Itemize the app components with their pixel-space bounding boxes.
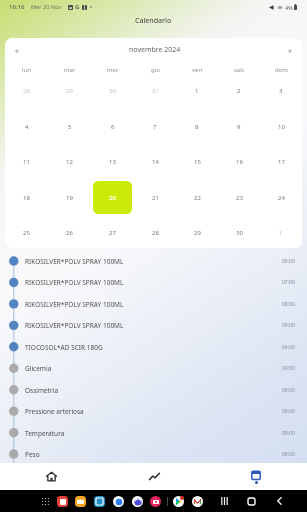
- staticText: sab: [234, 66, 244, 74]
- staticText: 8: [195, 123, 199, 131]
- button[interactable]: 22: [178, 181, 216, 214]
- button[interactable]: 26: [50, 216, 89, 248]
- button[interactable]: 11: [7, 145, 46, 178]
- staticText: 2: [237, 87, 241, 95]
- button[interactable]: 7: [136, 110, 174, 143]
- button[interactable]: RIKOSILVER*POLV SPRAY 100ML: [0, 274, 307, 290]
- button[interactable]: 28: [7, 74, 46, 107]
- staticText: Glicemia: [25, 364, 52, 373]
- staticText: Temperatura: [25, 429, 65, 438]
- button[interactable]: 27: [93, 216, 132, 248]
- staticText: 26: [66, 229, 73, 237]
- staticText: Calendario: [135, 16, 172, 26]
- button[interactable]: 9: [220, 110, 258, 143]
- button[interactable]: TIOCOSOL*AD SCIR 180G: [0, 339, 307, 355]
- button[interactable]: Play Store: [172, 490, 184, 512]
- button[interactable]: 23: [220, 181, 258, 214]
- button[interactable]: 28: [136, 216, 174, 248]
- staticText: ven: [192, 66, 203, 74]
- button[interactable]: 25: [7, 216, 46, 248]
- button[interactable]: RIKOSILVER*POLV SPRAY 100ML: [0, 253, 307, 269]
- button[interactable]: Back: [273, 490, 285, 512]
- button[interactable]: Previous month: [10, 43, 24, 57]
- button[interactable]: 8: [178, 110, 216, 143]
- button[interactable]: Glicemia: [0, 360, 307, 376]
- staticText: 5: [68, 123, 72, 131]
- staticText: 3: [279, 87, 283, 95]
- button[interactable]: Temperatura: [0, 425, 307, 441]
- staticText: 1: [195, 87, 199, 95]
- button[interactable]: 24: [262, 181, 300, 214]
- button[interactable]: 29: [50, 74, 89, 107]
- staticText: 14: [152, 158, 159, 166]
- staticText: dom: [275, 66, 288, 74]
- staticText: 30: [109, 87, 116, 95]
- staticText: 28: [152, 229, 159, 237]
- staticText: RIKOSILVER*POLV SPRAY 100ML: [25, 278, 124, 287]
- button[interactable]: 3: [262, 74, 300, 107]
- button[interactable]: 13: [93, 145, 132, 178]
- staticText: 25: [23, 229, 30, 237]
- button[interactable]: Gmail: [191, 490, 203, 512]
- staticText: 29: [66, 87, 73, 95]
- staticText: 10: [278, 123, 285, 131]
- button[interactable]: 4: [7, 110, 46, 143]
- button[interactable]: Home: [0, 463, 103, 490]
- button[interactable]: 17: [262, 145, 300, 178]
- staticText: mar: [64, 66, 76, 74]
- staticText: Peso: [25, 450, 40, 459]
- staticText: RIKOSILVER*POLV SPRAY 100ML: [25, 257, 124, 266]
- staticText: 27: [109, 229, 116, 237]
- button[interactable]: App 6: [149, 490, 161, 512]
- button[interactable]: RIKOSILVER*POLV SPRAY 100ML: [0, 296, 307, 312]
- button[interactable]: 18: [7, 181, 46, 214]
- button[interactable]: 31: [136, 74, 174, 107]
- staticText: 12: [66, 158, 73, 166]
- button[interactable]: Trends: [103, 463, 205, 490]
- button[interactable]: App 1: [56, 490, 68, 512]
- button[interactable]: App 5: [131, 490, 143, 512]
- button[interactable]: 30: [220, 216, 258, 248]
- button[interactable]: RIKOSILVER*POLV SPRAY 100ML: [0, 317, 307, 333]
- staticText: 09:00: [282, 365, 295, 372]
- button[interactable]: 15: [178, 145, 216, 178]
- staticText: mer: [107, 66, 119, 74]
- button[interactable]: 12: [50, 145, 89, 178]
- button[interactable]: Next month: [283, 43, 297, 57]
- button[interactable]: Calendar: [205, 463, 307, 490]
- button[interactable]: 2: [220, 74, 258, 107]
- staticText: 9: [237, 123, 241, 131]
- staticText: 20: [109, 194, 116, 202]
- button[interactable]: Recent apps: [218, 490, 230, 512]
- staticText: «: [15, 45, 19, 55]
- button[interactable]: 16: [220, 145, 258, 178]
- staticText: Pressione arteriosa: [25, 407, 84, 416]
- button[interactable]: Ossimetria: [0, 382, 307, 398]
- button[interactable]: All apps: [40, 490, 50, 512]
- button[interactable]: 6: [93, 110, 132, 143]
- button[interactable]: App 3: [93, 490, 105, 512]
- button[interactable]: 19: [50, 181, 89, 214]
- button[interactable]: 29: [178, 216, 216, 248]
- staticText: 29: [194, 229, 201, 237]
- button[interactable]: 14: [136, 145, 174, 178]
- button[interactable]: Pressione arteriosa: [0, 403, 307, 419]
- button[interactable]: 1: [178, 74, 216, 107]
- button[interactable]: 5: [50, 110, 89, 143]
- staticText: 08:00: [282, 301, 295, 308]
- button[interactable]: App 4: [112, 490, 124, 512]
- staticText: 09:00: [282, 430, 295, 437]
- staticText: 22: [194, 194, 201, 202]
- button[interactable]: App 2: [74, 490, 86, 512]
- button[interactable]: Home button: [245, 490, 257, 512]
- staticText: gio: [151, 66, 160, 74]
- button[interactable]: 10: [262, 110, 300, 143]
- button[interactable]: Peso: [0, 446, 307, 462]
- button[interactable]: 21: [136, 181, 174, 214]
- staticText: 30: [236, 229, 243, 237]
- button[interactable]: 20: [93, 181, 132, 214]
- button[interactable]: 30: [93, 74, 132, 107]
- staticText: 23: [236, 194, 243, 202]
- staticText: Ossimetria: [25, 386, 59, 395]
